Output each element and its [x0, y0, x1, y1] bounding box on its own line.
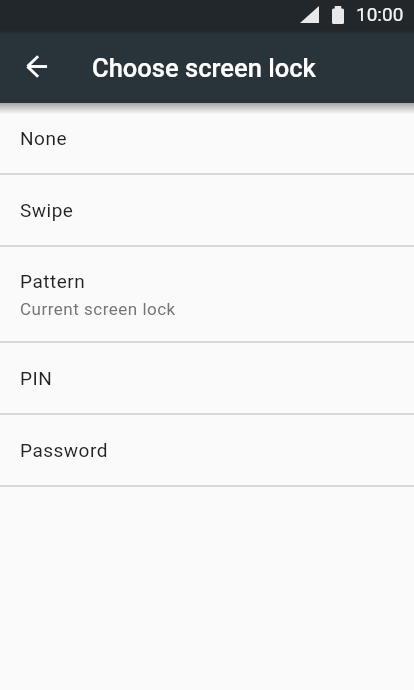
- staticText: Current screen lock: [20, 299, 176, 319]
- staticText: 10:00: [356, 3, 404, 25]
- button[interactable]: Password: [0, 415, 414, 485]
- button[interactable]: Swipe: [0, 175, 414, 245]
- staticText: Swipe: [20, 199, 74, 221]
- button[interactable]: [14, 43, 61, 90]
- staticText: None: [20, 127, 67, 149]
- staticText: PIN: [20, 367, 53, 389]
- staticText: Pattern: [20, 270, 86, 292]
- staticText: Choose screen lock: [92, 53, 316, 83]
- staticText: Password: [20, 439, 108, 461]
- button[interactable]: Pattern: [0, 247, 414, 341]
- button[interactable]: None: [0, 103, 414, 173]
- button[interactable]: PIN: [0, 343, 414, 413]
